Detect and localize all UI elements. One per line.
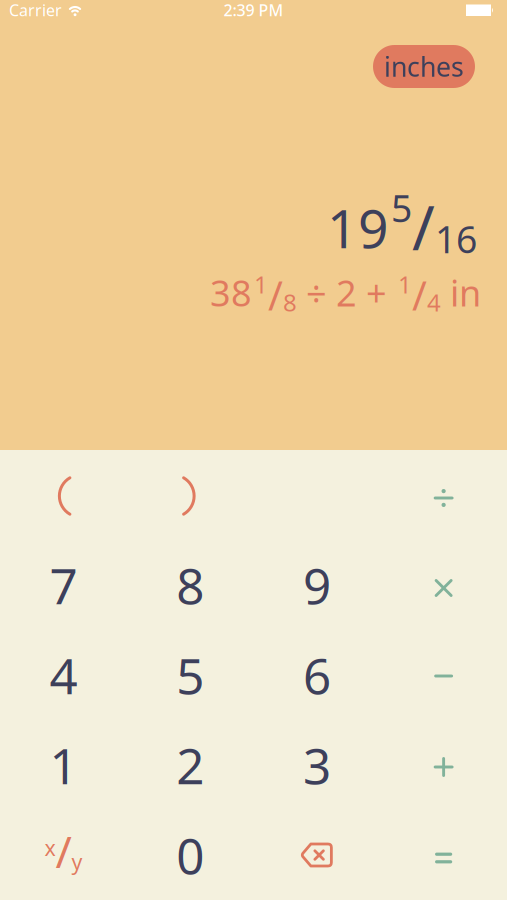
staticText: 7 (49, 552, 77, 618)
staticText: inches (384, 49, 464, 84)
button[interactable]: 7 (0, 540, 127, 630)
button[interactable] (380, 810, 507, 900)
button[interactable]: 0 (127, 810, 254, 900)
button[interactable] (380, 540, 507, 630)
staticText: 5 (176, 642, 204, 708)
staticText: 0 (176, 822, 204, 888)
button[interactable]: 6 (253, 630, 380, 720)
button[interactable] (380, 720, 507, 810)
button[interactable]: 1 (0, 720, 127, 810)
button[interactable]: 8 (127, 540, 254, 630)
staticText: 19 5/16 (327, 183, 477, 267)
button[interactable]: 9 (253, 540, 380, 630)
button[interactable]: 2 (127, 720, 254, 810)
staticText: 6 (303, 642, 331, 708)
staticText: 8 (176, 552, 204, 618)
button[interactable]: inches (373, 45, 475, 88)
button[interactable]: 3 (253, 720, 380, 810)
button[interactable]: 4 (0, 630, 127, 720)
staticText: 4 (49, 642, 77, 708)
staticText: 1 (49, 732, 77, 798)
button[interactable]: 5 (127, 630, 254, 720)
staticText: Carrier (9, 0, 62, 21)
staticText: 2 (176, 732, 204, 798)
staticText: 3 (303, 732, 331, 798)
button[interactable] (253, 810, 380, 900)
staticText: x/y (44, 822, 82, 880)
button[interactable] (127, 450, 254, 540)
staticText: 38 1/8 ÷ 2 + 1/4 in (210, 268, 481, 321)
staticText: 9 (303, 552, 331, 618)
staticText: 2:39 PM (223, 0, 283, 21)
button[interactable] (380, 630, 507, 720)
button[interactable] (0, 450, 127, 540)
button[interactable]: x/y (0, 810, 127, 900)
button[interactable] (380, 450, 507, 540)
